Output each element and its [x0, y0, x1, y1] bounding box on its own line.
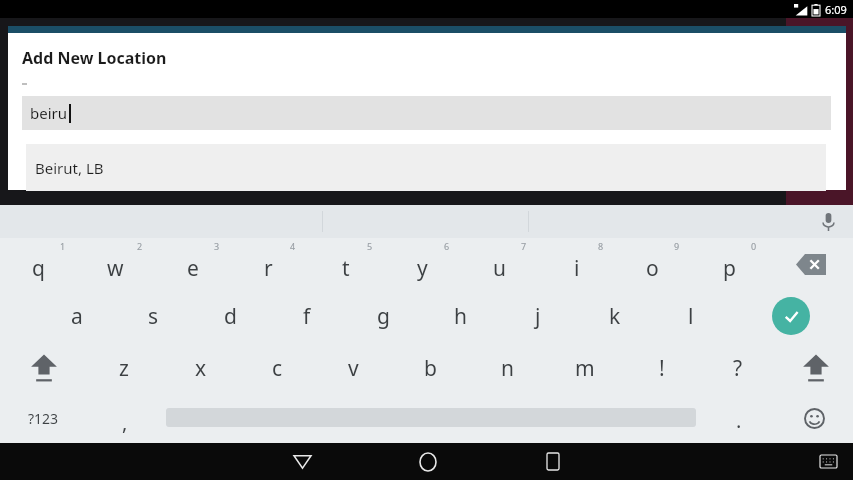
button[interactable]: k [576, 290, 653, 342]
staticText: 5 [367, 240, 373, 252]
button[interactable]: b [392, 342, 469, 394]
staticText: v [348, 354, 359, 383]
button[interactable]: beiru [22, 96, 831, 130]
staticText: r [264, 254, 273, 283]
staticText: 6 [444, 240, 450, 252]
button[interactable]: Home [408, 443, 448, 480]
button[interactable]: a [38, 290, 115, 342]
staticText: c [272, 354, 283, 383]
staticText: f [303, 302, 311, 331]
button[interactable]: . [710, 394, 768, 443]
staticText: b [424, 354, 437, 383]
button[interactable]: q [0, 238, 77, 290]
staticText: e [187, 254, 199, 283]
button[interactable]: n [469, 342, 546, 394]
staticText: beiru [30, 103, 68, 123]
staticText: o [646, 254, 659, 283]
staticText: 0 [751, 240, 757, 252]
staticText: Add New Location [22, 47, 167, 69]
staticText: d [224, 302, 237, 331]
button[interactable]: o [614, 238, 691, 290]
staticText: p [723, 254, 736, 283]
button[interactable]: h [422, 290, 499, 342]
button[interactable]: u [461, 238, 538, 290]
staticText: 3 [214, 240, 220, 252]
staticText: ! [659, 354, 665, 383]
button[interactable]: z [85, 342, 162, 394]
staticText: 6:09 [825, 2, 847, 17]
button[interactable]: ?123 [10, 394, 76, 443]
staticText: j [535, 302, 541, 331]
staticText: 2 [137, 240, 143, 252]
staticText: , [122, 409, 128, 436]
button[interactable]: w [77, 238, 154, 290]
staticText: 8 [598, 240, 604, 252]
staticText: q [32, 254, 45, 283]
button[interactable]: Voice input [817, 211, 839, 233]
button[interactable]: s [115, 290, 192, 342]
staticText: 7 [521, 240, 527, 252]
staticText: x [195, 354, 207, 383]
button[interactable]: l [652, 290, 729, 342]
button[interactable]: Enter [772, 297, 810, 335]
button[interactable]: y [384, 238, 461, 290]
staticText: t [342, 254, 350, 283]
staticText: 1 [60, 240, 66, 252]
staticText: a [71, 302, 83, 331]
staticText: n [501, 354, 514, 383]
staticText: s [148, 302, 159, 331]
button[interactable]: d [192, 290, 269, 342]
button[interactable]: Shift [786, 342, 846, 394]
staticText: h [454, 302, 467, 331]
button[interactable]: Emoji [788, 394, 840, 443]
button[interactable]: x [162, 342, 239, 394]
button[interactable]: e [154, 238, 231, 290]
staticText: i [574, 254, 580, 283]
staticText: l [688, 302, 694, 331]
button[interactable]: f [268, 290, 345, 342]
staticText: u [493, 254, 506, 283]
button[interactable]: r [230, 238, 307, 290]
staticText: 4 [290, 240, 296, 252]
button[interactable]: i [538, 238, 615, 290]
button[interactable]: m [546, 342, 623, 394]
button[interactable]: g [345, 290, 422, 342]
staticText: m [575, 354, 595, 383]
staticText: 9 [674, 240, 680, 252]
button[interactable]: ? [699, 342, 776, 394]
button[interactable]: c [239, 342, 316, 394]
staticText: w [107, 254, 124, 283]
staticText: ? [733, 354, 743, 383]
button[interactable]: Shift [14, 342, 74, 394]
staticText: y [417, 254, 428, 283]
button[interactable]: , [96, 394, 154, 443]
staticText: . [736, 407, 742, 434]
staticText: g [377, 302, 390, 331]
staticText: Beirut, LB [35, 158, 104, 178]
button[interactable]: Recents [533, 443, 573, 480]
button[interactable]: t [307, 238, 384, 290]
button[interactable]: ! [623, 342, 700, 394]
staticText: z [119, 354, 129, 383]
button[interactable]: p [691, 238, 768, 290]
button[interactable]: Back [282, 443, 322, 480]
button[interactable]: Backspace [784, 250, 838, 278]
staticText: k [609, 302, 621, 331]
button[interactable]: j [499, 290, 576, 342]
button[interactable]: Beirut, LB [26, 144, 826, 191]
button[interactable]: v [315, 342, 392, 394]
staticText: ?123 [28, 409, 59, 428]
button[interactable]: Hide keyboard [812, 443, 844, 480]
